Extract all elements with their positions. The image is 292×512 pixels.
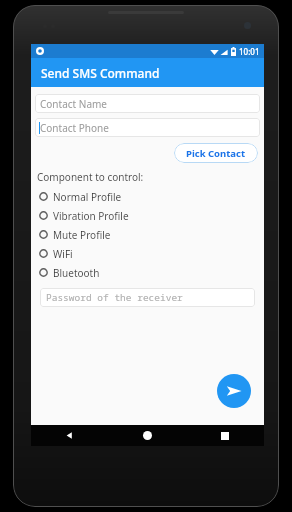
button[interactable]: Back (31, 425, 108, 446)
button[interactable]: Mute Profile (31, 225, 264, 244)
button[interactable]: Contact Phone (35, 118, 260, 137)
staticText: Component to control: (37, 170, 144, 184)
button[interactable]: Bluetooth (31, 263, 264, 282)
staticText: Contact Name (40, 97, 107, 111)
staticText: Bluetooth (53, 266, 100, 280)
button[interactable]: Home (108, 425, 186, 446)
staticText: Password of the receiver (46, 291, 183, 304)
button[interactable]: Contact Name (35, 94, 260, 113)
staticText: WiFi (53, 247, 73, 261)
button[interactable]: Vibration Profile (31, 206, 264, 225)
button[interactable]: WiFi (31, 244, 264, 263)
button[interactable]: Send SMS command (217, 374, 251, 408)
button[interactable]: Pick Contact (174, 143, 258, 163)
staticText: Send SMS Command (41, 65, 160, 81)
button[interactable]: Password of the receiver (40, 288, 255, 307)
button[interactable]: Recent apps (186, 425, 264, 446)
staticText: Vibration Profile (53, 209, 129, 223)
staticText: 10:01 (239, 46, 260, 57)
button[interactable]: Normal Profile (31, 187, 264, 206)
staticText: Contact Phone (40, 121, 109, 135)
staticText: Normal Profile (53, 190, 122, 204)
staticText: Mute Profile (53, 228, 111, 242)
staticText: Pick Contact (186, 147, 246, 160)
